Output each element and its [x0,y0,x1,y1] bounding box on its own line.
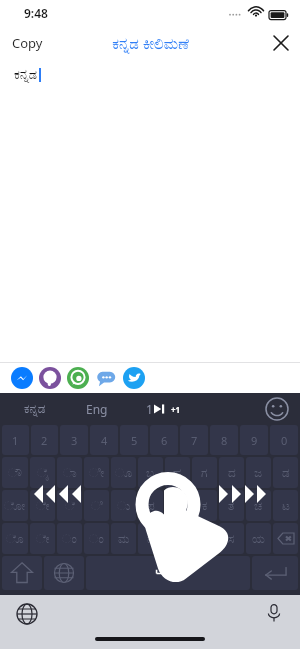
button[interactable]: 3 [60,425,88,455]
button[interactable]: ಕ [192,490,217,521]
button[interactable]: 5 [120,425,148,455]
button[interactable]: Messages [95,367,117,389]
button[interactable]: Dictate [264,603,284,623]
button[interactable]: 2 [31,425,58,455]
staticText: 1 [146,401,153,417]
staticText: 8 [221,433,228,448]
button[interactable]: ಟ [273,490,298,521]
staticText: ಂ [89,533,104,545]
button[interactable]: 8 [210,425,238,455]
button[interactable]: Backspace [273,523,298,554]
button[interactable]: ದ [219,457,244,488]
staticText: +1 [171,404,181,415]
staticText: ಕನ್ನಡ [14,69,38,82]
button[interactable]: ೆ [57,490,82,521]
button[interactable]: ಜ [246,457,271,488]
staticText: ೌ [8,467,22,479]
button[interactable]: ಗ [192,457,217,488]
button[interactable]: Twitter [123,367,145,389]
staticText: Eng [86,401,108,417]
button[interactable]: Enter [252,556,298,590]
button[interactable]: 0 [270,425,298,455]
button[interactable]: Space [86,556,250,590]
button[interactable]: ರ [165,490,190,521]
staticText: ೂ [115,467,133,479]
staticText: ೈ [37,467,49,479]
button[interactable]: ಹ [165,457,190,488]
staticText: 9 [251,433,258,448]
button[interactable]: 1 [2,425,29,455]
staticText: 6 [161,433,168,448]
staticText: ಾ [63,467,77,479]
button[interactable]: ೌ [2,457,28,488]
button[interactable]: WhatsApp [67,367,89,389]
button[interactable]: Messenger [11,367,33,389]
button[interactable]: ನ [138,523,163,554]
staticText: 9:48 [24,5,48,21]
button[interactable]: Close [262,30,300,56]
button[interactable]: ೂ [111,457,136,488]
button[interactable]: Viber [39,367,61,389]
button[interactable]: ೋ [2,490,28,521]
button[interactable]: ಮ [111,523,136,554]
staticText: ಂ [62,533,77,545]
button[interactable]: ಚ [246,490,271,521]
button[interactable]: Copy [0,28,55,58]
button[interactable]: ಂ [57,523,82,554]
staticText: 2 [41,433,48,448]
button[interactable]: ೊ [2,523,28,554]
staticText: ು [117,500,131,512]
button[interactable]: Language [44,556,84,590]
staticText: ದ [228,467,236,479]
staticText: ಸ [228,533,235,545]
staticText: ೀ [89,467,105,479]
staticText: 1 [12,433,19,448]
staticText: 7 [191,433,198,448]
button[interactable]: Emoji [264,396,290,422]
button[interactable]: ೇ [30,523,55,554]
staticText: ಕ [202,500,208,512]
button[interactable]: Globe [16,603,38,625]
button[interactable]: 4 [90,425,118,455]
button[interactable]: ೀ [84,457,109,488]
button[interactable]: ಸ [219,523,244,554]
staticText: 0 [281,433,288,448]
button[interactable]: 7 [180,425,208,455]
button[interactable]: ೈ [30,457,55,488]
staticText: Copy [12,34,43,52]
staticText: ಯ [252,533,265,545]
staticText: ಪ [147,500,155,512]
staticText: ಚ [254,500,263,512]
button[interactable]: 6 [150,425,178,455]
staticText: ೋ [4,500,26,512]
staticText: ಗ [201,467,208,479]
button[interactable]: ಲ [192,523,217,554]
staticText: ೇ [36,500,50,512]
button[interactable]: ತ [219,490,244,521]
button[interactable]: Speed [128,393,198,424]
button[interactable]: ಂ [84,523,109,554]
button[interactable]: ೇ [30,490,55,521]
button[interactable]: ಾ [57,457,82,488]
button[interactable]: Eng [66,393,128,424]
button[interactable]: ಬ [138,457,163,488]
staticText: ಹ [173,467,182,479]
button[interactable]: ು [111,490,136,521]
button[interactable]: Shift [2,556,42,590]
button[interactable]: ಡ [273,457,298,488]
staticText: ೆ [65,500,75,512]
staticText: ಟ [282,500,290,512]
staticText: ಮ [118,533,130,545]
staticText: ಕನ್ನಡ [24,403,46,415]
staticText: 3 [71,433,78,448]
button[interactable]: 9 [240,425,268,455]
button[interactable]: ಪ [138,490,163,521]
button[interactable]: ಯ [246,523,271,554]
staticText: 4 [101,433,108,448]
button[interactable]: ಕನ್ನಡ [4,393,66,424]
